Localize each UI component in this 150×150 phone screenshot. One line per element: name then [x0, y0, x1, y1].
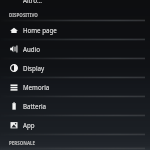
staticText: Batteria	[23, 102, 47, 110]
staticText: Audio	[23, 45, 40, 53]
staticText: Display	[23, 64, 45, 72]
button[interactable]: Batteria	[0, 97, 150, 115]
button[interactable]: Display	[0, 59, 150, 77]
staticText: Home page	[23, 26, 57, 34]
staticText: DISPOSITIVO	[9, 12, 38, 18]
button[interactable]: Home page	[0, 21, 150, 39]
staticText: Altro...	[23, 0, 42, 3]
button[interactable]: App	[0, 116, 150, 134]
button[interactable]: Memoria	[0, 78, 150, 96]
button[interactable]: Altro...	[0, 0, 150, 7]
staticText: App	[23, 121, 35, 129]
button[interactable]: Audio	[0, 40, 150, 58]
staticText: Memoria	[23, 83, 50, 91]
staticText: PERSONALE	[9, 140, 36, 146]
